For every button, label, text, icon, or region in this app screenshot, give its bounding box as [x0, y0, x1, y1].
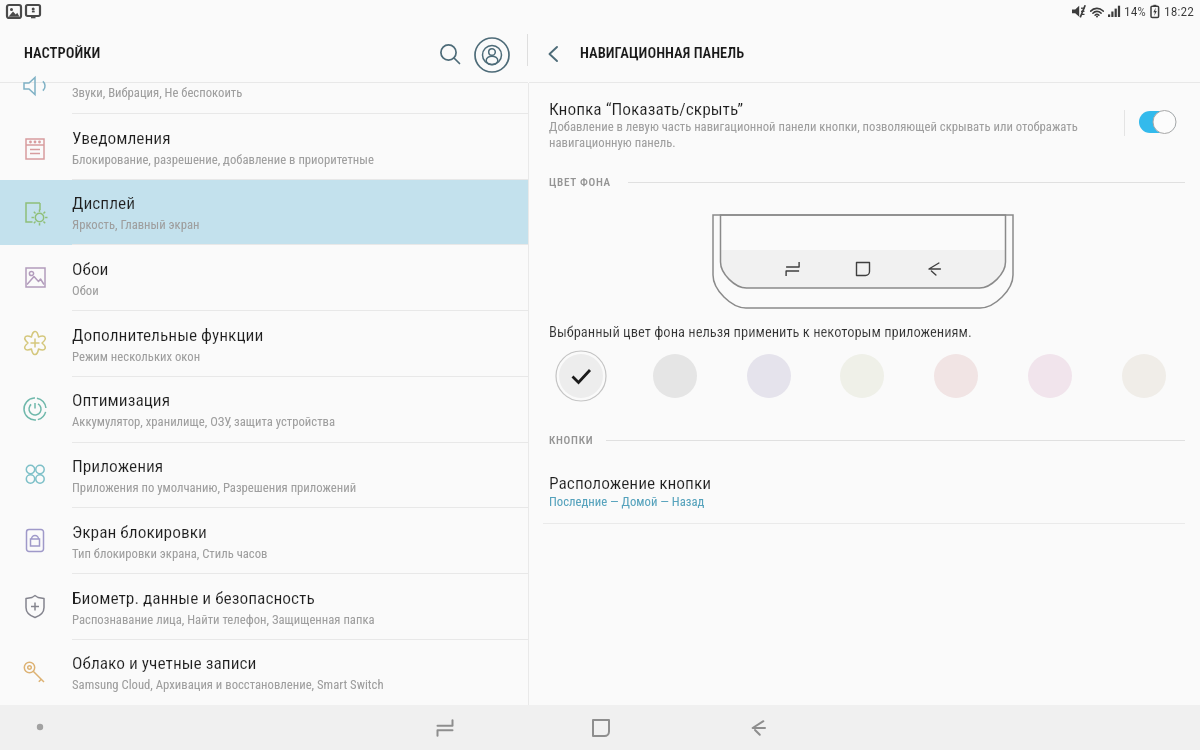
staticText: Обои [72, 259, 109, 279]
staticText: НАСТРОЙКИ [24, 45, 101, 62]
button[interactable] [0, 377, 528, 442]
button[interactable]: Toggle show/hide button [1131, 105, 1183, 139]
staticText: 18:22 [1164, 3, 1194, 19]
button[interactable] [529, 83, 1200, 159]
staticText: Режим нескольких окон [72, 349, 201, 364]
staticText: Последние — Домой — Назад [549, 494, 705, 509]
button[interactable]: Back [532, 32, 576, 76]
staticText: Биометр. данные и безопасность [72, 588, 315, 608]
staticText: Облако и учетные записи [72, 653, 257, 673]
staticText: Экран блокировки [72, 522, 207, 542]
button[interactable]: Background colour 4 [836, 350, 888, 402]
staticText: Приложения по умолчанию, Разрешения прил… [72, 480, 357, 495]
staticText: 14% [1124, 3, 1146, 19]
staticText: Дополнительные функции [72, 325, 264, 345]
button[interactable]: Back [697, 705, 817, 750]
staticText: Добавление в левую часть навигационной п… [549, 119, 1089, 151]
staticText: Расположение кнопки [549, 473, 712, 493]
staticText: Samsung Cloud, Архивация и восстановлени… [72, 677, 384, 692]
staticText: НАВИГАЦИОННАЯ ПАНЕЛЬ [580, 45, 745, 62]
staticText: Яркость, Главный экран [72, 217, 200, 232]
button[interactable]: Background colour 1 [555, 350, 607, 402]
button[interactable] [0, 640, 528, 705]
button[interactable]: Background colour 7 [1118, 350, 1170, 402]
button[interactable] [0, 574, 528, 639]
button[interactable]: Background colour 5 [930, 350, 982, 402]
button[interactable] [0, 114, 528, 179]
staticText: Распознавание лица, Найти телефон, Защищ… [72, 612, 375, 627]
button[interactable]: Recents [385, 705, 505, 750]
button[interactable]: Home [541, 705, 661, 750]
button[interactable]: Account [470, 33, 513, 76]
staticText: Оптимизация [72, 390, 171, 410]
staticText: Аккумулятор, хранилище, ОЗУ, защита устр… [72, 414, 336, 429]
staticText: Обои [72, 283, 99, 298]
staticText: Приложения [72, 456, 164, 476]
staticText: Блокирование, разрешение, добавление в п… [72, 152, 374, 167]
staticText: КНОПКИ [549, 434, 594, 447]
button[interactable] [0, 311, 528, 376]
button[interactable] [529, 460, 1200, 522]
button[interactable]: Search [430, 34, 472, 76]
button[interactable]: Background colour 6 [1024, 350, 1076, 402]
button[interactable]: Background colour 3 [743, 350, 795, 402]
staticText: ЦВЕТ ФОНА [549, 176, 611, 189]
staticText: Дисплей [72, 193, 136, 213]
button[interactable]: Background colour 2 [649, 350, 701, 402]
staticText: Выбранный цвет фона нельзя применить к н… [549, 324, 972, 341]
button[interactable] [0, 443, 528, 508]
staticText: Уведомления [72, 128, 171, 148]
staticText: Звуки, Вибрация, Не беспокоить [72, 85, 243, 100]
button[interactable] [0, 180, 528, 245]
button[interactable] [0, 245, 528, 310]
staticText: Тип блокировки экрана, Стиль часов [72, 546, 268, 561]
staticText: Кнопка “Показать/скрыть” [549, 99, 744, 119]
button[interactable] [0, 508, 528, 573]
